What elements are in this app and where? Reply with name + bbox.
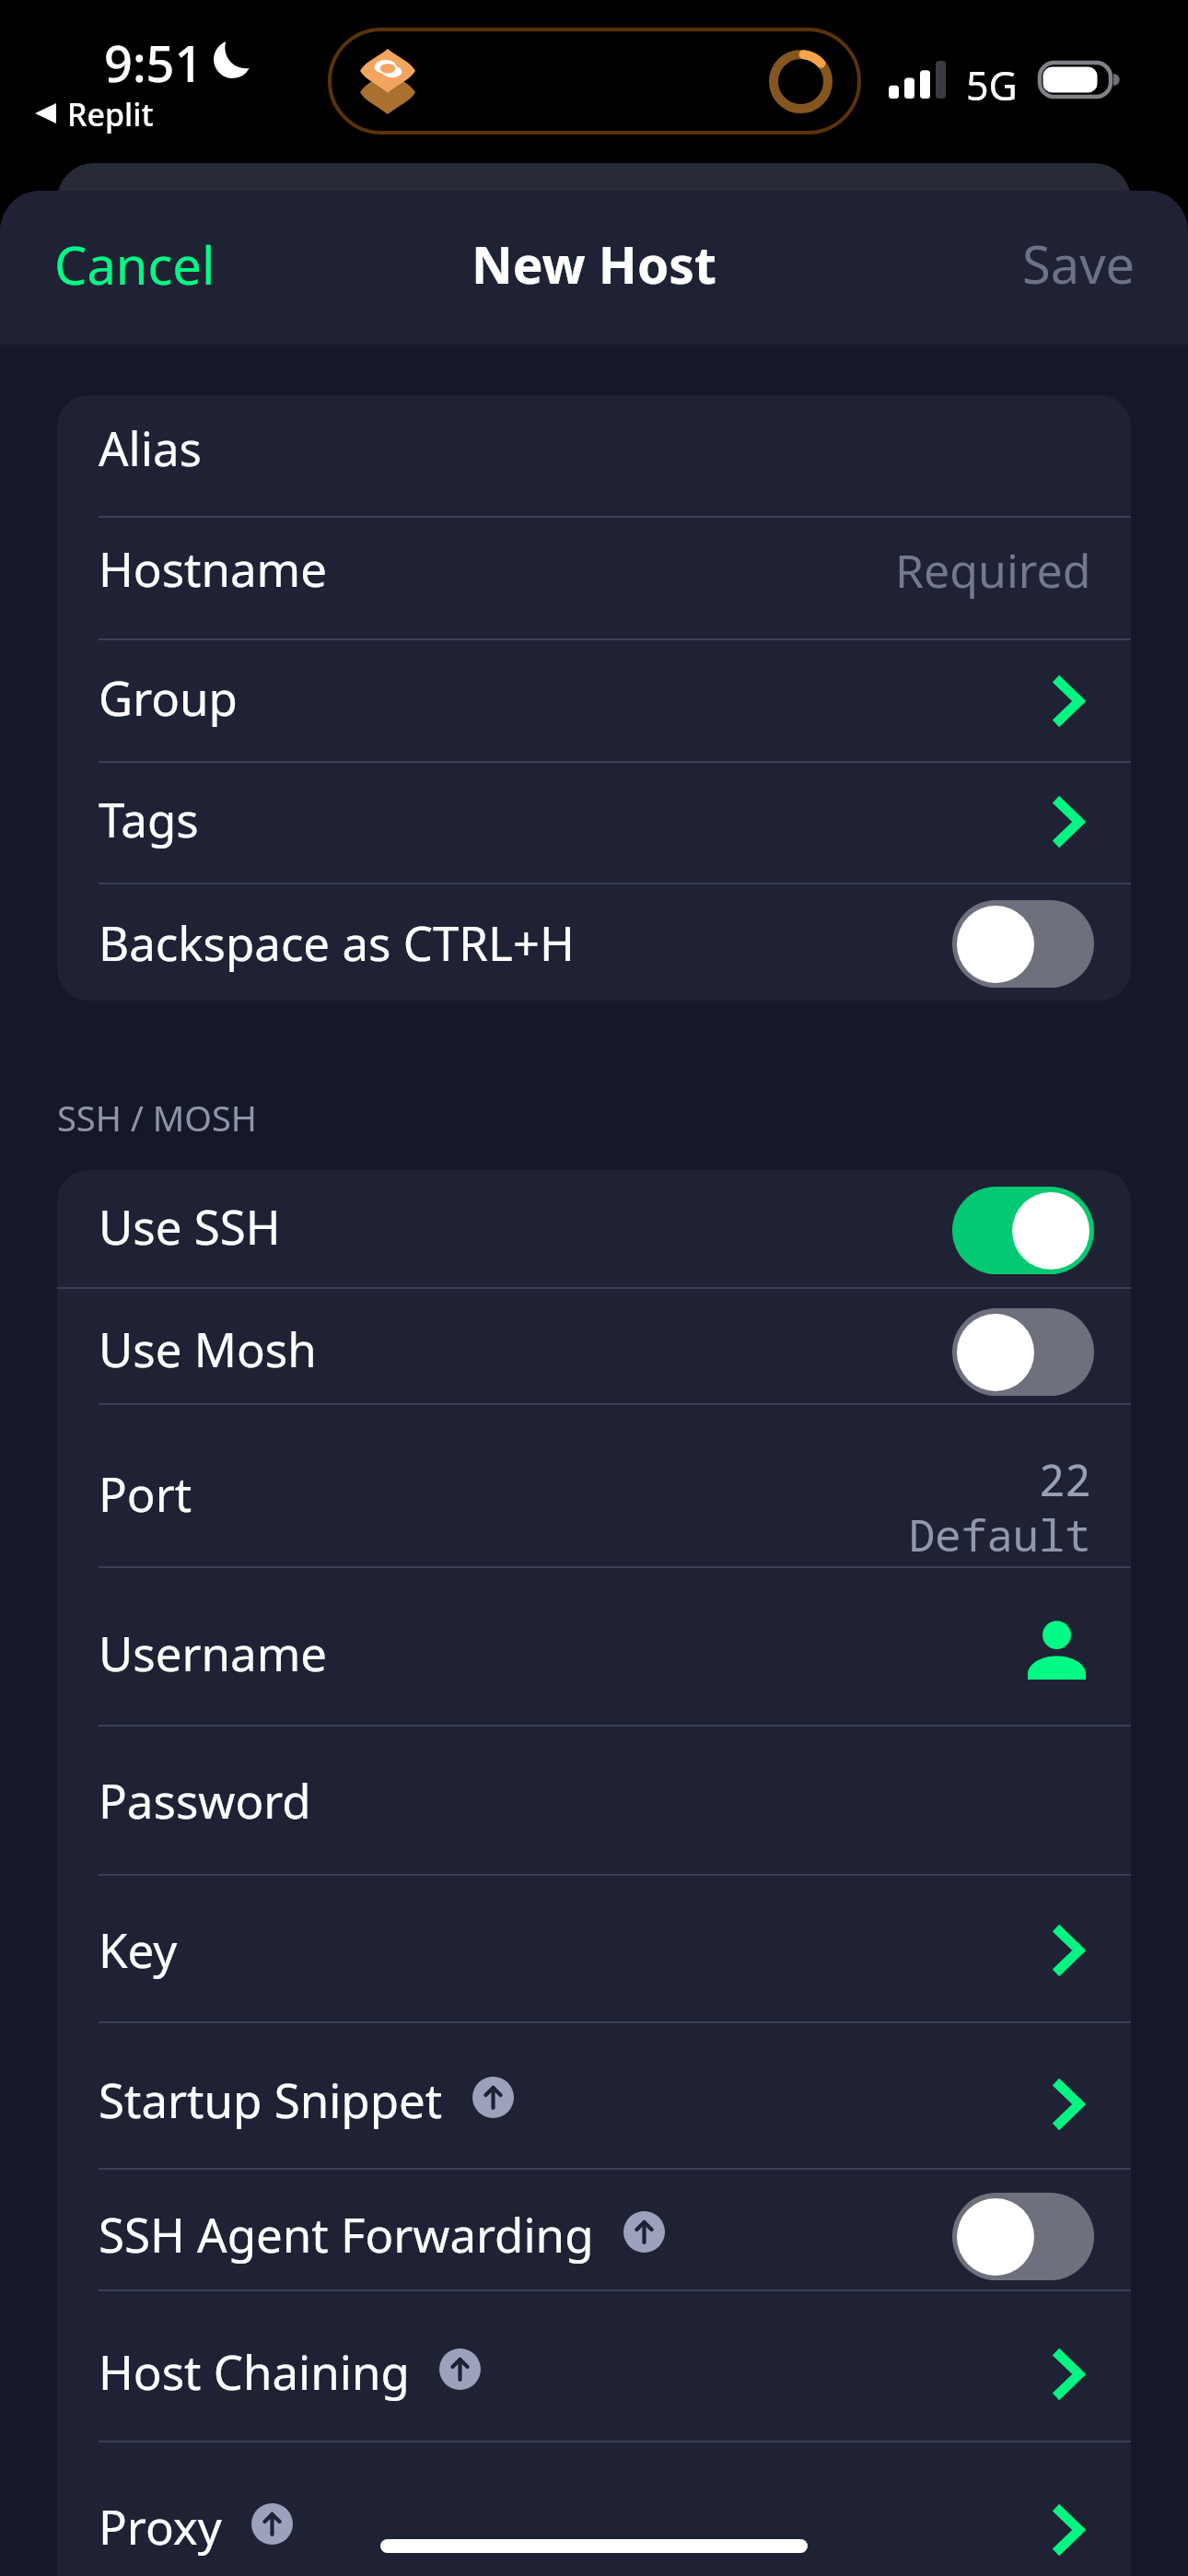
staticText: New Host [472,229,716,299]
button[interactable]: Save [1004,217,1188,319]
staticText: Username [99,1621,328,1684]
button[interactable]: Use Mosh [952,1308,1094,1396]
staticText: Proxy [99,2494,222,2558]
staticText: Required [895,539,1091,602]
button[interactable]: Host Chaining [57,2291,1131,2441]
staticText: Alias [99,416,202,479]
button[interactable]: Group [57,640,1131,761]
staticText: Backspace as CTRL+H [99,910,575,974]
staticText: Use SSH [99,1194,281,1258]
staticText: 22 [1039,1450,1091,1509]
staticText: Default [909,1505,1091,1564]
staticText: SSH Agent Forwarding [99,2202,594,2266]
button[interactable]: Password [57,1727,1131,1874]
button[interactable]: Backspace as CTRL+H [57,884,1131,1001]
button[interactable]: Cancel [0,218,234,318]
button[interactable]: Port [57,1405,1131,1566]
button[interactable]: Use SSH [57,1170,1131,1287]
button[interactable]: Proxy [57,2442,1131,2576]
button[interactable]: Key [57,1876,1131,2021]
button[interactable]: Startup Snippet [57,2023,1131,2168]
button[interactable]: Use Mosh [57,1289,1131,1403]
staticText: Use Mosh [99,1317,317,1380]
staticText: Password [99,1768,311,1832]
button[interactable]: Username [57,1568,1131,1725]
button[interactable]: SSH Agent Forwarding [952,2193,1094,2280]
button[interactable]: Tags [57,763,1131,883]
staticText: Port [99,1461,192,1525]
staticText: SSH / MOSH [57,1094,257,1142]
staticText: 5G [966,58,1018,112]
staticText: Tags [99,787,199,850]
staticText: Host Chaining [99,2339,410,2403]
staticText: 9:51 [104,29,204,97]
button[interactable]: Use SSH [952,1187,1094,1274]
button[interactable]: Alias [57,395,1131,516]
staticText: Replit [67,93,154,135]
staticText: Startup Snippet [99,2067,443,2131]
staticText: Key [99,1917,178,1981]
button[interactable]: Backspace as CTRL+H [952,900,1094,988]
button[interactable]: SSH Agent Forwarding [57,2170,1131,2289]
button[interactable]: Hostname [57,518,1131,638]
staticText: Group [99,665,238,729]
staticText: Hostname [99,536,328,600]
